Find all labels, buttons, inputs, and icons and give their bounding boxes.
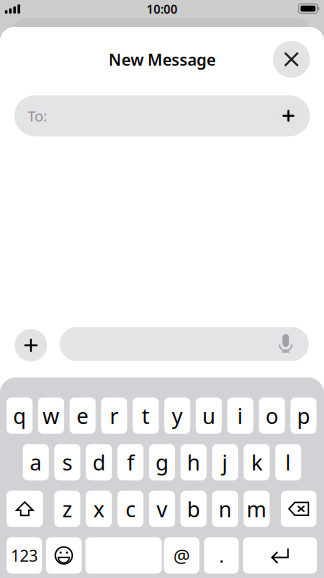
button[interactable]: n bbox=[212, 491, 238, 527]
staticText: h bbox=[187, 448, 200, 476]
button[interactable]: Add contact bbox=[276, 103, 301, 128]
staticText: d bbox=[92, 448, 105, 476]
button[interactable]: l bbox=[275, 444, 301, 480]
staticText: u bbox=[202, 401, 215, 430]
staticText: p bbox=[297, 401, 310, 430]
button[interactable]: b bbox=[180, 491, 206, 527]
button[interactable]: m bbox=[244, 491, 270, 527]
button[interactable]: Close bbox=[273, 41, 310, 78]
staticText: . bbox=[219, 543, 224, 568]
staticText: To: bbox=[27, 106, 47, 126]
button[interactable]: f bbox=[117, 444, 143, 480]
button[interactable]: c bbox=[117, 491, 143, 527]
staticText: i bbox=[237, 401, 243, 430]
button[interactable]: v bbox=[149, 491, 175, 527]
staticText: j bbox=[222, 448, 228, 476]
button[interactable]: h bbox=[181, 444, 207, 480]
button[interactable]: . bbox=[204, 537, 239, 574]
button[interactable]: Attach bbox=[15, 329, 47, 361]
staticText: r bbox=[110, 401, 119, 430]
staticText: g bbox=[155, 448, 168, 476]
staticText: l bbox=[285, 448, 291, 476]
button[interactable]: j bbox=[212, 444, 238, 480]
staticText: 123 bbox=[11, 545, 38, 566]
button[interactable]: @ bbox=[164, 537, 199, 574]
staticText: b bbox=[187, 495, 200, 523]
button[interactable]: z bbox=[54, 491, 80, 527]
staticText: c bbox=[125, 495, 135, 523]
button[interactable]: w bbox=[38, 397, 64, 434]
staticText: a bbox=[30, 448, 42, 476]
button[interactable]: a bbox=[23, 444, 49, 480]
button[interactable]: Return bbox=[243, 537, 317, 574]
button[interactable]: d bbox=[86, 444, 112, 480]
staticText: n bbox=[219, 495, 232, 523]
staticText: New Message bbox=[108, 49, 215, 70]
button[interactable]: r bbox=[101, 397, 127, 434]
button[interactable]: q bbox=[6, 397, 32, 434]
staticText: e bbox=[77, 401, 89, 430]
button[interactable]: p bbox=[290, 397, 316, 434]
staticText: o bbox=[265, 401, 278, 430]
staticText: v bbox=[156, 495, 167, 523]
staticText: y bbox=[172, 401, 183, 430]
button[interactable]: Emoji bbox=[46, 537, 82, 574]
button[interactable]: i bbox=[227, 397, 253, 434]
staticText: @ bbox=[173, 543, 190, 568]
button[interactable]: Delete bbox=[281, 491, 316, 527]
staticText: z bbox=[62, 495, 72, 523]
staticText: w bbox=[42, 401, 59, 430]
button[interactable]: y bbox=[164, 397, 190, 434]
staticText: 10:00 bbox=[146, 1, 177, 17]
staticText: x bbox=[93, 495, 104, 523]
button[interactable]: x bbox=[86, 491, 112, 527]
staticText: q bbox=[13, 401, 26, 430]
staticText: k bbox=[251, 448, 262, 476]
button[interactable]: s bbox=[54, 444, 80, 480]
button[interactable]: e bbox=[70, 397, 96, 434]
button[interactable]: 123 bbox=[6, 537, 42, 574]
button[interactable]: g bbox=[149, 444, 175, 480]
button[interactable]: k bbox=[244, 444, 270, 480]
button[interactable]: t bbox=[133, 397, 159, 434]
staticText: t bbox=[142, 401, 150, 430]
staticText: f bbox=[127, 448, 134, 476]
button[interactable]: Shift bbox=[6, 491, 43, 527]
button[interactable] bbox=[85, 537, 162, 574]
staticText: m bbox=[247, 495, 267, 523]
button[interactable]: o bbox=[259, 397, 285, 434]
button[interactable]: u bbox=[196, 397, 222, 434]
staticText: s bbox=[62, 448, 72, 476]
